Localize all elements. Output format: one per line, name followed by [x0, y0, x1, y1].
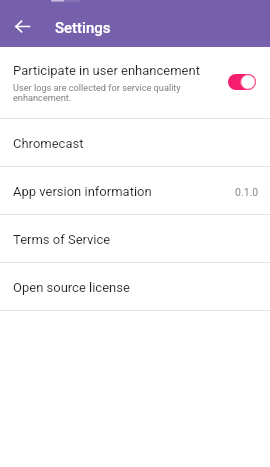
staticText: User logs are collected for service qual… — [13, 82, 207, 104]
button[interactable]: Open source license — [0, 263, 270, 310]
button[interactable]: Terms of Service — [0, 215, 270, 262]
staticText: Chromecast — [13, 136, 84, 151]
staticText: App version information — [13, 184, 152, 199]
button[interactable]: Back — [0, 8, 44, 44]
button[interactable]: App version information — [0, 167, 270, 214]
staticText: 0.1.0 — [235, 186, 259, 198]
staticText: Terms of Service — [13, 232, 111, 247]
staticText: Participate in user enhancement — [13, 63, 200, 78]
button[interactable]: Participate in user enhancement — [0, 47, 270, 118]
button[interactable]: Chromecast — [0, 119, 270, 166]
staticText: Settings — [55, 19, 111, 37]
staticText: Open source license — [13, 280, 130, 295]
button[interactable]: Participate in user enhancement toggle — [224, 64, 260, 100]
